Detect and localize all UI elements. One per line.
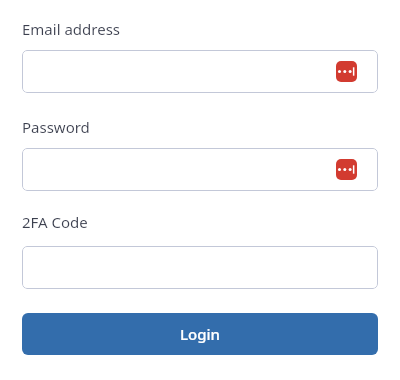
button[interactable]: Login bbox=[22, 313, 378, 355]
button[interactable] bbox=[22, 246, 378, 289]
button[interactable] bbox=[22, 50, 378, 93]
staticText: Email address bbox=[22, 19, 121, 39]
button[interactable] bbox=[22, 148, 378, 191]
staticText: 2FA Code bbox=[22, 212, 88, 232]
staticText: Password bbox=[22, 117, 90, 137]
staticText: Login bbox=[180, 324, 220, 344]
